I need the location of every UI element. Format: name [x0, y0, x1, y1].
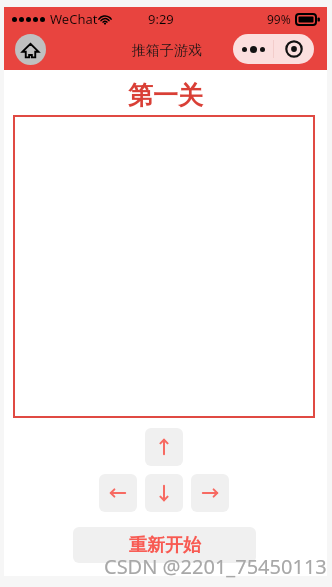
button[interactable]: Move up [145, 428, 183, 466]
staticText: 重新开始 [129, 534, 201, 557]
staticText: 推箱子游戏 [132, 42, 202, 60]
staticText: WeChat [50, 10, 98, 28]
button[interactable]: Move down [145, 474, 183, 512]
button[interactable]: Home [15, 34, 46, 65]
button[interactable]: More menu [233, 34, 314, 64]
staticText: 9:29 [148, 10, 174, 28]
button[interactable]: Move right [191, 474, 229, 512]
button[interactable]: 重新开始 [73, 527, 256, 563]
button[interactable]: Move left [99, 474, 137, 512]
staticText: CSDN @2201_75450113 [104, 553, 327, 580]
staticText: 99% [267, 11, 291, 27]
staticText: 第一关 [128, 80, 203, 111]
